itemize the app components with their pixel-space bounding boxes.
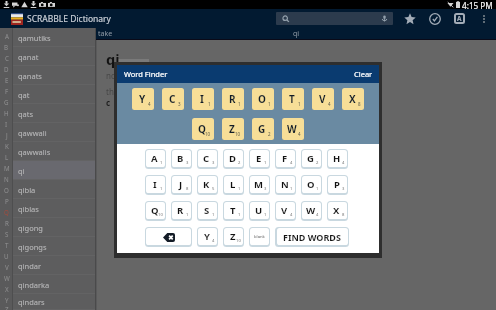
button[interactable]: Z [223,227,244,247]
button[interactable]: B [0,41,13,52]
button[interactable]: E [249,149,270,169]
button[interactable]: G [0,96,13,107]
button[interactable]: T [223,201,244,221]
button[interactable]: Backspace [145,227,192,247]
button[interactable]: G [252,118,274,140]
button[interactable]: J [0,129,13,140]
button[interactable]: S [0,228,13,239]
button[interactable]: H [0,107,13,118]
button[interactable]: O [301,175,322,195]
button[interactable]: qat [13,85,96,104]
staticText: qiblas [18,204,39,214]
button[interactable]: P [327,175,348,195]
button[interactable]: J [171,175,192,195]
button[interactable]: M [249,175,270,195]
button[interactable]: Q [145,201,166,221]
button[interactable]: Favorites [402,11,417,26]
button[interactable]: Y [197,227,218,247]
button[interactable]: F [275,149,296,169]
staticText: C [169,92,176,106]
button[interactable]: T [0,239,13,250]
button[interactable]: W [301,201,322,221]
button[interactable]: qigong [13,218,96,237]
staticText: I [153,178,157,191]
button[interactable]: qigongs [13,237,96,256]
button[interactable]: qats [13,104,96,123]
button[interactable]: qawwali [13,123,96,142]
button[interactable]: D [223,149,244,169]
button[interactable]: S [197,201,218,221]
button[interactable]: E [0,74,13,85]
staticText: qindarka [18,280,50,290]
button[interactable]: Q [192,118,214,140]
button[interactable]: K [0,140,13,151]
staticText: Word Finder [124,69,168,79]
button[interactable]: Search [276,12,393,25]
button[interactable]: Check word [427,11,442,26]
button[interactable]: K [197,175,218,195]
button[interactable]: qindars [13,294,96,310]
button[interactable]: Anagram [452,11,467,26]
button[interactable]: C [197,149,218,169]
staticText: 1 [186,212,189,218]
button[interactable]: I [145,175,166,195]
staticText: L [230,178,236,191]
button[interactable]: U [249,201,270,221]
button[interactable]: G [301,149,322,169]
staticText: no [106,70,116,81]
button[interactable]: Q [0,206,13,217]
button[interactable]: qanats [13,66,96,85]
button[interactable]: M [0,162,13,173]
button[interactable]: More options [479,11,489,26]
button[interactable]: H [327,149,348,169]
button[interactable]: R [222,88,244,110]
button[interactable]: qamutiks [13,28,96,47]
button[interactable]: T [282,88,304,110]
button[interactable]: Z [0,305,13,310]
button[interactable]: O [252,88,274,110]
button[interactable]: R [171,201,192,221]
staticText: P [5,197,9,205]
button[interactable]: Y [132,88,154,110]
button[interactable]: F [0,85,13,96]
button[interactable]: I [192,88,214,110]
button[interactable]: A [0,30,13,41]
button[interactable]: N [0,173,13,184]
button[interactable]: V [312,88,334,110]
button[interactable]: qi [13,161,96,180]
button[interactable]: blank [249,227,270,247]
button[interactable]: C [0,52,13,63]
button[interactable]: W [282,118,304,140]
button[interactable]: V [0,261,13,272]
button[interactable]: V [275,201,296,221]
button[interactable]: X [0,283,13,294]
staticText: S [5,230,9,238]
button[interactable]: qindarka [13,275,96,294]
button[interactable]: A [145,149,166,169]
button[interactable]: FIND WORDS [275,227,349,247]
button[interactable]: N [275,175,296,195]
button[interactable]: X [327,201,348,221]
button[interactable]: P [0,195,13,206]
button[interactable]: qibla [13,180,96,199]
staticText: B [4,43,9,51]
button[interactable]: W [0,272,13,283]
button[interactable]: I [0,118,13,129]
button[interactable]: D [0,63,13,74]
button[interactable]: X [342,88,364,110]
button[interactable]: qindar [13,256,96,275]
button[interactable]: L [223,175,244,195]
button[interactable]: B [171,149,192,169]
button[interactable]: L [0,151,13,162]
button[interactable]: U [0,250,13,261]
button[interactable]: qanat [13,47,96,66]
button[interactable]: C [162,88,184,110]
button[interactable]: Y [0,294,13,305]
button[interactable]: Clear [348,65,379,83]
button[interactable]: O [0,184,13,195]
button[interactable]: qawwalis [13,142,96,161]
button[interactable]: Z [222,118,244,140]
button[interactable]: R [0,217,13,228]
staticText: P [334,178,340,191]
button[interactable]: qiblas [13,199,96,218]
